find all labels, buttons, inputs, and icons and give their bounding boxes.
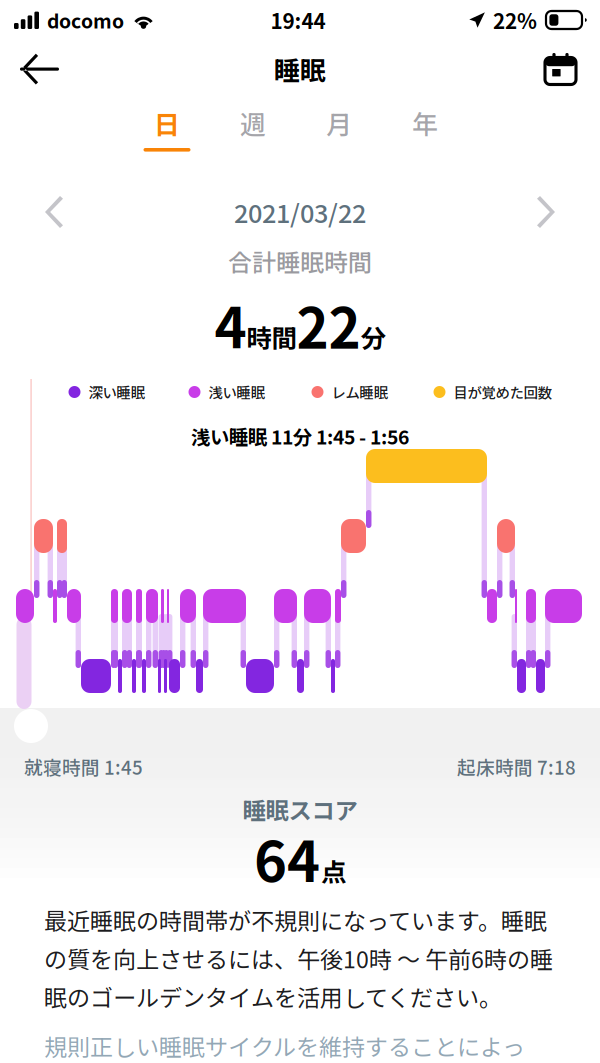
staticText: 最近睡眠の時間帯が不規則になっています。睡眠の質を向上させるには、午後10時 〜…	[44, 903, 553, 1013]
button[interactable]: 週	[210, 102, 296, 164]
staticText: 時間	[246, 318, 296, 355]
staticText: 起床時間 7:18	[457, 753, 576, 780]
button[interactable]: 次の日	[517, 186, 575, 238]
staticText: 深い睡眠	[88, 382, 144, 402]
button[interactable]: 前の日	[25, 186, 83, 238]
staticText: 4	[214, 284, 246, 364]
staticText: 就寝時間 1:45	[24, 753, 143, 780]
button[interactable]: 戻る	[0, 43, 75, 94]
staticText: 浅い睡眠 11分 1:45 - 1:56	[191, 422, 409, 450]
staticText: 合計睡眠時間	[228, 244, 372, 278]
staticText: docomo	[47, 6, 124, 34]
staticText: 分	[360, 318, 385, 355]
staticText: 19:44	[270, 5, 325, 35]
staticText: 浅い睡眠	[208, 382, 264, 402]
button[interactable]: 年	[382, 102, 468, 164]
staticText: 点	[321, 852, 346, 889]
staticText: 64	[254, 816, 320, 898]
staticText: 月	[326, 104, 352, 142]
staticText: 日	[154, 104, 180, 142]
button[interactable]: カレンダー	[531, 45, 600, 93]
staticText: 22	[296, 284, 360, 364]
staticText: 目が覚めた回数	[453, 382, 551, 402]
staticText: 年	[412, 104, 438, 142]
staticText: 規則正しい睡眠サイクルを維持することによって、	[44, 1029, 525, 1063]
button[interactable]: 日	[124, 102, 210, 164]
staticText: 睡眠スコア	[242, 792, 357, 826]
staticText: 22%	[493, 5, 537, 35]
button[interactable]: 月	[296, 102, 382, 164]
staticText: レム睡眠	[331, 382, 387, 402]
staticText: 2021/03/22	[234, 194, 366, 230]
staticText: 睡眠	[274, 50, 326, 88]
staticText: 週	[240, 104, 266, 142]
